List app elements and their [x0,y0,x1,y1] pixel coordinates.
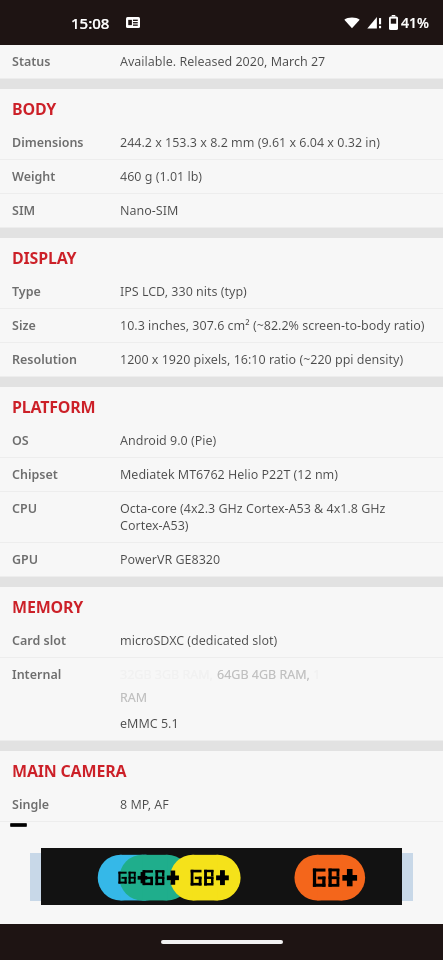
staticText: OS [12,432,29,449]
staticText: Card slot [12,632,67,649]
staticText: Nano-SIM [120,202,179,219]
staticText: Status [12,53,51,70]
staticText: Weight [12,168,56,185]
button[interactable]: OS [0,424,443,458]
staticText: IPS LCD, 330 nits (typ) [120,283,247,300]
button[interactable]: SIM [0,194,443,228]
staticText: PLATFORM [12,396,96,418]
button[interactable]: Dimensions [0,126,443,160]
staticText: RAM [120,689,148,706]
staticText: Resolution [12,351,78,368]
button[interactable]: CPU [0,492,443,543]
button[interactable]: Single [0,788,443,822]
button[interactable]: Resolution [0,343,443,377]
button[interactable]: Chipset [0,458,443,492]
staticText: Single [12,796,50,813]
button[interactable]: Weight [0,160,443,194]
button[interactable]: Internal [0,658,443,741]
button[interactable]: Status [0,45,443,79]
button[interactable]: Video [0,822,443,829]
staticText: 1200 x 1920 pixels, 16:10 ratio (~220 pp… [120,351,404,368]
button[interactable]: Type [0,275,443,309]
staticText: GPU [12,551,39,568]
staticText: Size [12,317,36,334]
staticText: Octa-core (4x2.3 GHz Cortex-A53 & 4x1.8 … [120,500,425,534]
staticText: Type [12,283,41,300]
staticText: CPU [12,500,38,517]
staticText: PowerVR GE8320 [120,551,221,568]
staticText: Mediatek MT6762 Helio P22T (12 nm) [120,466,339,483]
staticText: 8 MP, AF [120,796,169,813]
staticText: 244.2 x 153.3 x 8.2 mm (9.61 x 6.04 x 0.… [120,134,380,151]
staticText: Dimensions [12,134,84,151]
staticText: SIM [12,202,36,219]
staticText: microSDXC (dedicated slot) [120,632,278,649]
staticText: Available. Released 2020, March 27 [120,53,326,70]
staticText: BODY [12,98,57,120]
staticText: 10.3 inches, 307.6 cm² (~82.2% screen-to… [120,317,425,334]
staticText: MAIN CAMERA [12,760,127,782]
staticText: 41% [401,13,429,32]
staticText: Internal [12,666,62,683]
button[interactable]: GPU [0,543,443,577]
staticText: DISPLAY [12,247,77,269]
staticText: Chipset [12,466,58,483]
staticText: 15:08 [71,13,110,33]
staticText: Android 9.0 (Pie) [120,432,217,449]
staticText: 460 g (1.01 lb) [120,168,203,185]
button[interactable]: Card slot [0,624,443,658]
staticText: MEMORY [12,596,84,618]
staticText: eMMC 5.1 [120,715,179,732]
button[interactable]: Advertisement [41,848,402,905]
button[interactable]: Size [0,309,443,343]
staticText: 64GB 4GB RAM, [217,666,310,683]
